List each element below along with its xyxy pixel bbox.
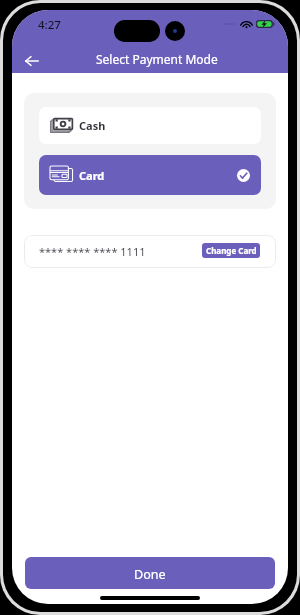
button[interactable]: Done: [25, 557, 275, 589]
staticText: Card: [79, 168, 105, 183]
button[interactable]: Change Card: [202, 243, 260, 258]
staticText: **** **** **** 1111: [39, 244, 146, 259]
button[interactable]: Back: [19, 48, 45, 73]
staticText: Cash: [79, 118, 106, 133]
staticText: 4:27: [38, 17, 61, 33]
button[interactable]: Cash: [39, 107, 261, 144]
staticText: Done: [134, 566, 166, 583]
button[interactable]: Card: [39, 155, 261, 195]
staticText: Change Card: [206, 245, 257, 256]
staticText: Select Payment Mode: [96, 51, 218, 67]
button[interactable]: **** **** **** 1111: [24, 235, 276, 268]
